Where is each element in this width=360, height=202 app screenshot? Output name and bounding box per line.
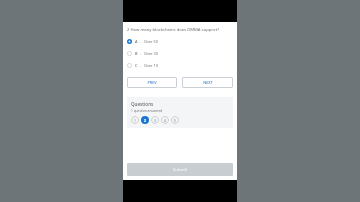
staticText: Over 50: [144, 39, 158, 44]
staticText: A: [135, 39, 138, 44]
staticText: Over 10: [144, 63, 158, 68]
button[interactable]: Submit: [127, 163, 233, 176]
staticText: 3: [154, 118, 156, 123]
staticText: 5: [174, 118, 176, 123]
staticText: C: [135, 63, 138, 68]
staticText: Over 30: [144, 51, 158, 56]
staticText: 1: [134, 118, 136, 123]
staticText: 2 How many blockchains does DMMA support…: [127, 27, 219, 33]
staticText: -: [140, 51, 142, 56]
button[interactable]: PREV: [127, 77, 177, 88]
staticText: 2: [144, 118, 146, 123]
staticText: PREV: [147, 80, 157, 85]
staticText: 1 question answered: [131, 109, 163, 113]
staticText: Questions: [131, 101, 154, 107]
staticText: 4: [164, 118, 166, 123]
staticText: -: [140, 63, 142, 68]
button[interactable]: C: [127, 63, 233, 68]
button[interactable]: Question 2: [141, 116, 149, 124]
staticText: Submit: [173, 167, 188, 173]
button[interactable]: A: [127, 39, 233, 44]
button[interactable]: B: [127, 51, 233, 56]
button[interactable]: NEXT: [182, 77, 233, 88]
staticText: B: [135, 51, 138, 56]
staticText: NEXT: [203, 80, 213, 85]
staticText: -: [140, 39, 142, 44]
button[interactable]: Question 3: [151, 116, 159, 124]
button[interactable]: Question 1: [131, 116, 139, 124]
button[interactable]: Question 5: [171, 116, 179, 124]
button[interactable]: Question 4: [161, 116, 169, 124]
